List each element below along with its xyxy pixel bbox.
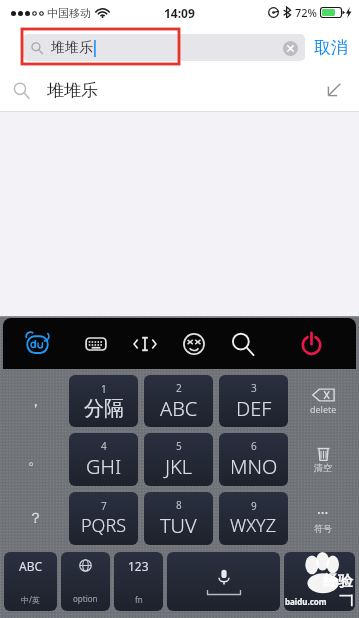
staticText: 1 <box>101 382 107 396</box>
staticText: 堆堆乐 <box>47 80 98 101</box>
staticText: option <box>73 593 98 604</box>
staticText: DEF <box>236 395 272 422</box>
staticText: 8 <box>176 498 182 512</box>
staticText: ABC <box>160 395 198 422</box>
button[interactable]: 3 <box>219 375 288 427</box>
staticText: WXYZ <box>230 513 277 538</box>
staticText: 经验 <box>323 572 353 591</box>
button[interactable]: Search <box>218 318 267 369</box>
staticText: 5 <box>176 439 182 453</box>
button[interactable]: Input options <box>61 552 110 611</box>
button[interactable]: Search <box>284 552 355 611</box>
button[interactable]: 9 <box>219 492 288 545</box>
button[interactable]: Delete <box>291 372 355 430</box>
button[interactable]: 7 <box>69 492 138 545</box>
button[interactable]: Emoji <box>169 318 218 369</box>
button[interactable]: Keyboard layout <box>71 318 120 369</box>
button[interactable]: 5 <box>144 433 213 486</box>
staticText: 72% <box>295 5 317 20</box>
staticText: 3 <box>251 381 257 395</box>
button[interactable]: 1 <box>69 375 138 427</box>
staticText: fn <box>135 594 143 605</box>
staticText: 14:09 <box>164 5 195 21</box>
staticText: delete <box>310 403 337 415</box>
button[interactable]: Baidu input method <box>3 318 71 369</box>
staticText: 清空 <box>314 462 332 473</box>
button[interactable]: 取消 <box>314 37 348 58</box>
button[interactable]: Space, hold for voice input <box>167 552 280 611</box>
staticText: TUV <box>160 512 197 539</box>
button[interactable]: Symbols <box>291 489 355 548</box>
button[interactable]: ABC <box>4 552 57 611</box>
staticText: 6 <box>251 439 257 453</box>
staticText: 9 <box>251 499 257 513</box>
button[interactable]: 6 <box>219 433 288 486</box>
button[interactable]: ， <box>4 372 66 430</box>
button[interactable]: 2 <box>144 375 213 427</box>
staticText: ABC <box>19 558 43 574</box>
staticText: 符号 <box>314 523 332 534</box>
button[interactable]: 堆堆乐 <box>23 34 305 61</box>
button[interactable]: Clear all <box>291 430 355 489</box>
button[interactable]: 123 <box>114 552 163 611</box>
staticText: JKL <box>165 453 193 480</box>
staticText: 2 <box>176 381 182 395</box>
button[interactable]: 4 <box>69 433 138 486</box>
staticText: GHI <box>86 453 122 480</box>
staticText: 堆堆乐 <box>51 39 93 57</box>
staticText: baidu.com <box>285 596 327 607</box>
staticText: PQRS <box>81 513 127 538</box>
staticText: 中国移动 <box>47 6 91 20</box>
staticText: ， <box>28 392 43 411</box>
staticText: 123 <box>128 558 149 574</box>
staticText: 取消 <box>314 37 348 58</box>
staticText: 。 <box>28 450 43 469</box>
staticText: ··· <box>317 503 329 522</box>
staticText: 7 <box>101 499 107 513</box>
button[interactable]: Move cursor <box>120 318 169 369</box>
staticText: 4 <box>101 439 107 453</box>
staticText: 分隔 <box>84 396 124 421</box>
staticText: ？ <box>28 509 43 528</box>
button[interactable]: Clear text <box>283 41 298 56</box>
button[interactable]: 。 <box>4 430 66 489</box>
staticText: 中/英 <box>21 594 40 605</box>
button[interactable]: 堆堆乐 <box>0 69 359 111</box>
button[interactable]: Use this suggestion <box>324 80 344 100</box>
button[interactable]: 8 <box>144 492 213 545</box>
staticText: MNO <box>230 453 278 480</box>
button[interactable]: ？ <box>4 489 66 548</box>
button[interactable]: Hide keyboard <box>267 318 356 369</box>
